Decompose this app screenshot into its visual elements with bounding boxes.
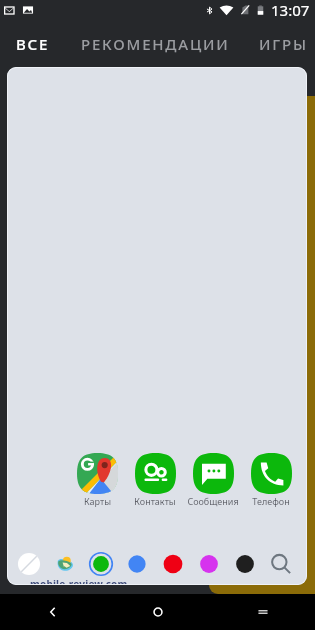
- button[interactable]: Colour: [227, 552, 263, 576]
- button[interactable]: Карты: [68, 453, 126, 507]
- button[interactable]: ВСЕ: [16, 34, 50, 54]
- staticText: mobile-review.com: [30, 577, 128, 585]
- button[interactable]: Colour: [155, 552, 191, 576]
- button[interactable]: Colour: [83, 552, 119, 576]
- button[interactable]: Back: [0, 605, 105, 619]
- staticText: Контакты: [134, 495, 176, 507]
- button[interactable]: Colour: [11, 552, 47, 576]
- staticText: ВСЕ: [16, 34, 50, 54]
- staticText: ИГРЫ: [259, 34, 308, 54]
- button[interactable]: Телефон: [242, 453, 300, 507]
- button[interactable]: РЕКОМЕНДАЦИИ: [81, 34, 230, 54]
- staticText: 13:07: [271, 0, 310, 20]
- staticText: Телефон: [252, 495, 290, 507]
- staticText: Сообщения: [187, 495, 239, 507]
- button[interactable]: Сообщения: [184, 453, 242, 507]
- staticText: РЕКОМЕНДАЦИИ: [81, 34, 230, 54]
- button[interactable]: Home: [105, 606, 210, 618]
- button[interactable]: ИГРЫ: [259, 34, 308, 54]
- button[interactable]: Colour: [191, 552, 227, 576]
- button[interactable]: Контакты: [126, 453, 184, 507]
- button[interactable]: Colour: [119, 552, 155, 576]
- button[interactable]: Search: [263, 552, 299, 576]
- button[interactable]: Colour: [47, 552, 83, 576]
- staticText: Карты: [84, 495, 111, 507]
- button[interactable]: Recents: [210, 606, 315, 618]
